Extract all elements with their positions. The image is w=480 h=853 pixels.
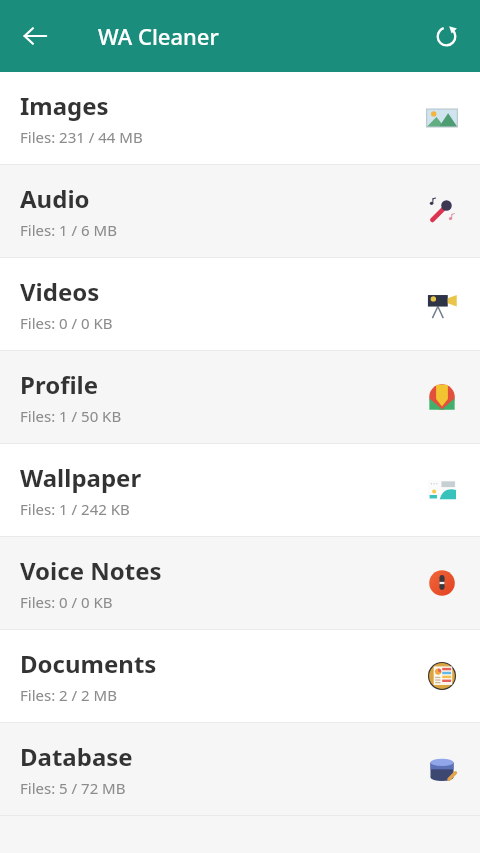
button[interactable]: Documents [0, 630, 480, 723]
staticText: Database [20, 740, 133, 773]
staticText: Voice Notes [20, 554, 162, 587]
button[interactable]: Back [11, 12, 59, 60]
button[interactable]: Audio [0, 165, 480, 258]
staticText: Files: 5 / 72 MB [20, 778, 126, 798]
staticText: Images [20, 89, 109, 122]
staticText: Documents [20, 647, 157, 680]
button[interactable]: Videos [0, 258, 480, 351]
button[interactable]: Refresh [422, 12, 470, 60]
button[interactable]: Voice Notes [0, 537, 480, 630]
staticText: Files: 1 / 6 MB [20, 220, 117, 240]
staticText: Files: 1 / 242 KB [20, 499, 130, 519]
staticText: Wallpaper [20, 461, 142, 494]
staticText: Files: 0 / 0 KB [20, 313, 113, 333]
button[interactable]: Database [0, 723, 480, 816]
button[interactable]: Profile [0, 351, 480, 444]
staticText: Files: 1 / 50 KB [20, 406, 122, 426]
staticText: Profile [20, 368, 99, 401]
button[interactable]: Wallpaper [0, 444, 480, 537]
staticText: Videos [20, 275, 100, 308]
staticText: Files: 231 / 44 MB [20, 127, 143, 147]
staticText: WA Cleaner [98, 21, 219, 51]
button[interactable]: Images [0, 72, 480, 165]
staticText: Files: 2 / 2 MB [20, 685, 117, 705]
staticText: Audio [20, 182, 90, 215]
staticText: Files: 0 / 0 KB [20, 592, 113, 612]
